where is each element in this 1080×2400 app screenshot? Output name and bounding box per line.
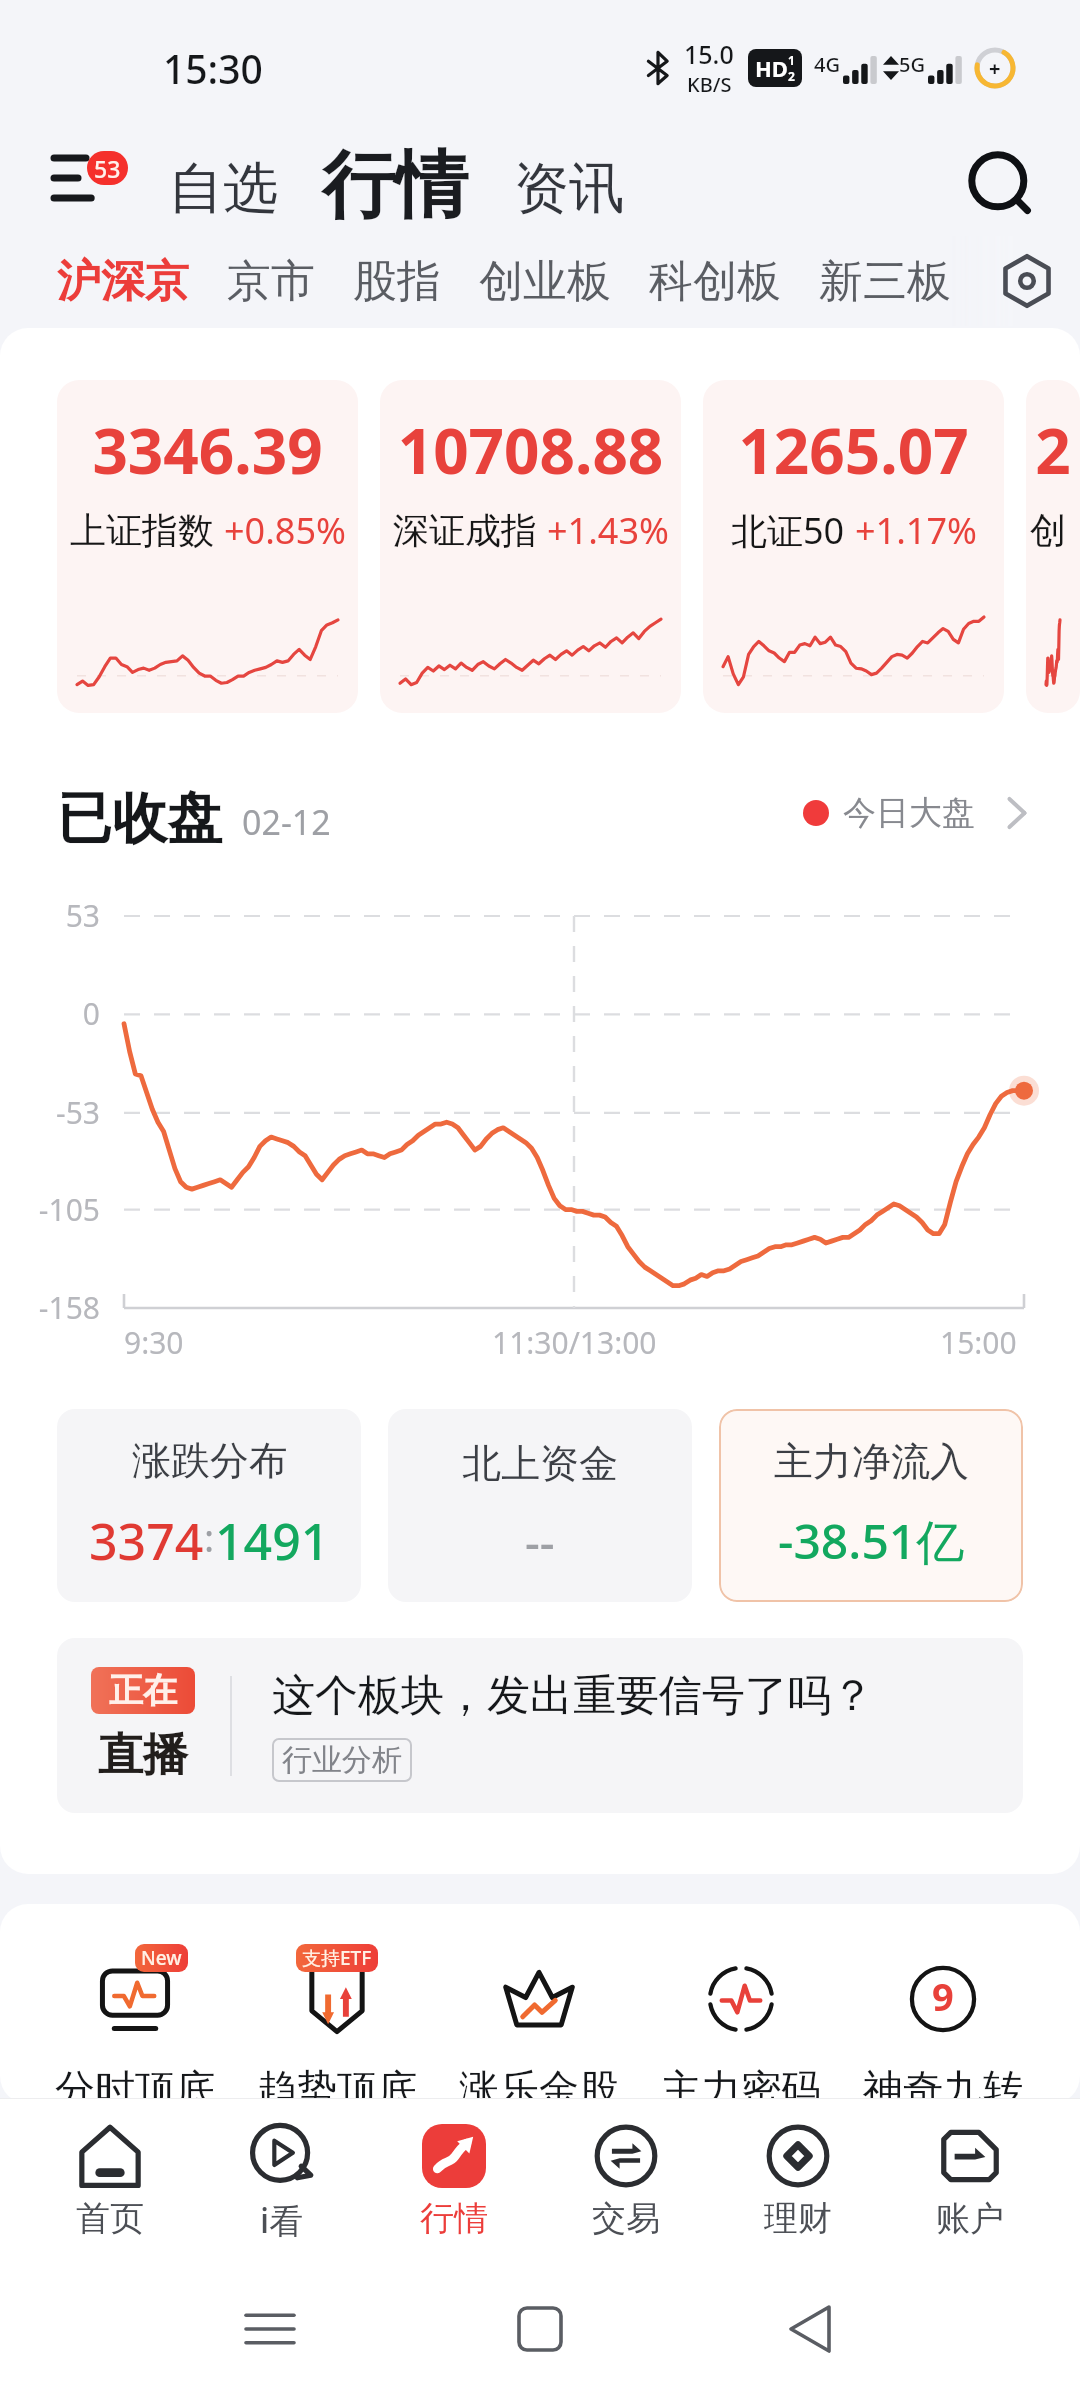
button[interactable]: 首页 xyxy=(24,2098,196,2258)
staticText: 创 xyxy=(1030,508,1066,553)
staticText: 神奇九转 xyxy=(863,2064,1023,2104)
staticText: +1.43% xyxy=(547,506,669,555)
button[interactable]: 新三板 xyxy=(819,254,951,309)
staticText: -105 xyxy=(0,1189,100,1230)
button[interactable]: 创业板 xyxy=(479,254,611,309)
staticText: 3374 xyxy=(89,1507,204,1575)
staticText: 涨跌分布 xyxy=(132,1436,288,1485)
staticText: -158 xyxy=(0,1287,100,1328)
staticText: 北证50 xyxy=(731,506,845,555)
button[interactable]: 行情 xyxy=(368,2098,540,2258)
button[interactable]: 交易 xyxy=(540,2098,712,2258)
button[interactable]: 9 xyxy=(842,1944,1044,2104)
staticText: 支持ETF xyxy=(302,1945,372,1971)
staticText: 理财 xyxy=(764,2197,832,2240)
staticText: 行业分析 xyxy=(282,1741,402,1779)
staticText: 直播 xyxy=(98,1727,188,1784)
staticText: 上证指数 xyxy=(70,508,214,553)
staticText: 账户 xyxy=(936,2197,1004,2240)
staticText: 15:30 xyxy=(163,42,263,95)
staticText: HD xyxy=(755,53,788,83)
staticText: -38.51亿 xyxy=(778,1508,965,1574)
button[interactable]: 京市 xyxy=(227,254,315,309)
staticText: 10708.88 xyxy=(380,408,681,492)
staticText: i看 xyxy=(260,2197,304,2243)
staticText: 1491 xyxy=(215,1507,330,1575)
staticText: 15:00 xyxy=(940,1322,1017,1363)
button[interactable]: 2 xyxy=(1026,380,1080,713)
staticText: 53 xyxy=(0,895,100,936)
button[interactable]: 1265.07 xyxy=(703,380,1004,713)
button[interactable]: Menu xyxy=(40,143,140,233)
staticText: 0 xyxy=(0,993,100,1034)
button[interactable]: 股指 xyxy=(353,254,441,309)
button[interactable]: 科创板 xyxy=(649,254,781,309)
staticText: -53 xyxy=(0,1092,100,1133)
button[interactable]: 主力净流入 xyxy=(719,1409,1023,1602)
staticText: 5G xyxy=(899,51,925,78)
staticText: 北上资金 xyxy=(462,1439,618,1488)
staticText: 今日大盘 xyxy=(843,792,975,834)
staticText: 2 xyxy=(1026,408,1080,492)
button[interactable]: 资讯 xyxy=(514,154,624,223)
staticText: 3346.39 xyxy=(57,408,358,492)
button[interactable]: 沪深京 xyxy=(57,254,189,309)
button[interactable]: 正在 xyxy=(57,1638,1023,1813)
button[interactable]: Search xyxy=(950,138,1050,238)
staticText: 9 xyxy=(932,1970,954,2022)
staticText: 15.0 xyxy=(684,37,734,71)
button[interactable]: 支持ETF xyxy=(236,1944,438,2104)
button[interactable]: Settings xyxy=(982,236,1072,326)
staticText: -- xyxy=(525,1510,555,1573)
staticText: 深证成指 xyxy=(393,508,537,553)
staticText: 这个板块，发出重要信号了吗？ xyxy=(272,1669,874,1723)
staticText: 趋势顶底 xyxy=(257,2064,417,2104)
staticText: 分时顶底 xyxy=(55,2064,215,2104)
button[interactable]: 今日大盘 xyxy=(803,792,1026,834)
staticText: 9:30 xyxy=(124,1322,184,1363)
staticText: +1.17% xyxy=(855,506,977,555)
staticText: 53 xyxy=(94,153,121,184)
staticText: 1 xyxy=(788,52,795,68)
button[interactable]: 涨乐金股 xyxy=(438,1944,640,2104)
staticText: 已收盘 xyxy=(57,784,222,853)
button[interactable]: 行情 xyxy=(322,142,468,234)
button[interactable]: 3346.39 xyxy=(57,380,358,713)
button[interactable]: 10708.88 xyxy=(380,380,681,713)
button[interactable]: New xyxy=(34,1944,236,2104)
staticText: 02-12 xyxy=(242,799,331,845)
staticText: New xyxy=(141,1945,182,1971)
button[interactable]: 主力密码 xyxy=(640,1944,842,2104)
staticText: +0.85% xyxy=(224,506,346,555)
staticText: + xyxy=(989,55,1001,82)
button[interactable]: 涨跌分布 xyxy=(57,1409,361,1602)
staticText: 2 xyxy=(788,68,795,84)
staticText: 正在 xyxy=(109,1669,177,1712)
button[interactable]: 理财 xyxy=(712,2098,884,2258)
staticText: 行情 xyxy=(420,2197,488,2240)
button[interactable]: 自选 xyxy=(168,154,278,223)
staticText: 主力净流入 xyxy=(774,1437,969,1486)
staticText: 4G xyxy=(814,51,840,78)
button[interactable]: i看 xyxy=(196,2098,368,2258)
staticText: KB/S xyxy=(687,71,732,98)
staticText: 主力密码 xyxy=(661,2064,821,2104)
staticText: 1265.07 xyxy=(703,408,1004,492)
staticText: 11:30/13:00 xyxy=(492,1322,657,1363)
staticText: 涨乐金股 xyxy=(459,2064,619,2104)
button[interactable]: 账户 xyxy=(884,2098,1056,2258)
button[interactable]: 北上资金 xyxy=(388,1409,692,1602)
staticText: 首页 xyxy=(76,2197,144,2240)
staticText: : xyxy=(204,1511,215,1563)
staticText: 交易 xyxy=(592,2197,660,2240)
